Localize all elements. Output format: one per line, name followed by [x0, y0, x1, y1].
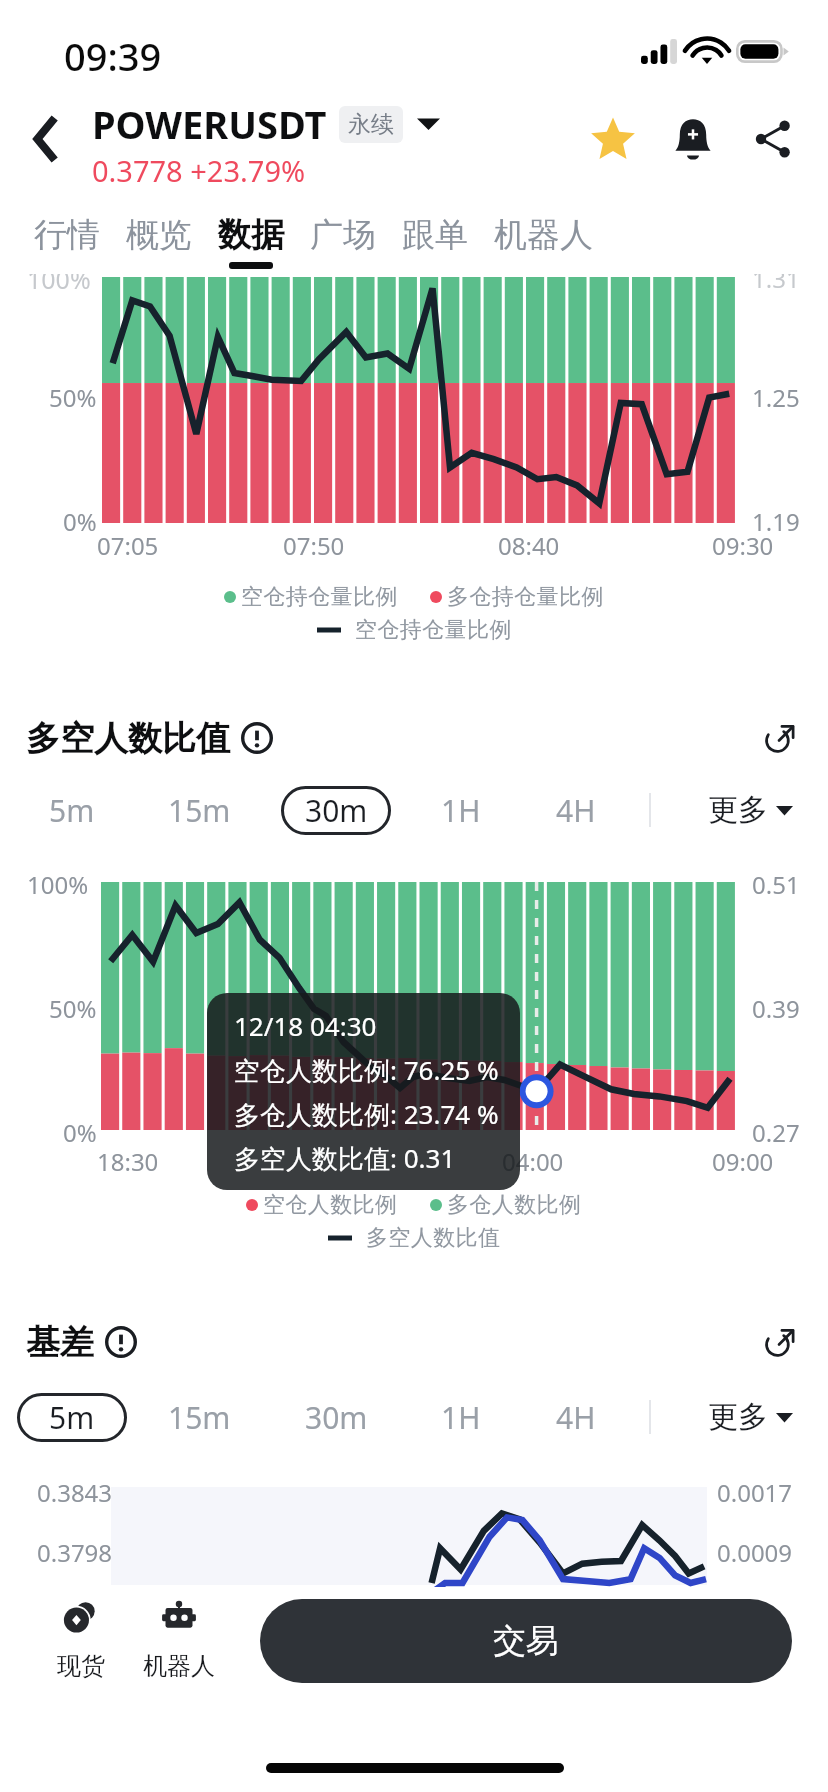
staticText: POWERUSDT: [92, 98, 327, 150]
staticText: 5m: [49, 1397, 95, 1438]
staticText: 1H: [441, 1397, 481, 1438]
staticText: 机器人: [494, 214, 593, 256]
staticText: 0%: [63, 505, 97, 538]
button[interactable]: Share: [744, 110, 802, 168]
staticText: 30m: [305, 1397, 368, 1438]
button[interactable]: Open full screen: [754, 715, 806, 761]
button[interactable]: 更多: [676, 1386, 824, 1448]
staticText: 4H: [556, 1397, 596, 1438]
staticText: 0.51: [752, 868, 800, 901]
staticText: 数据: [218, 214, 284, 256]
staticText: 09:39: [64, 30, 162, 82]
staticText: 15m: [168, 790, 231, 831]
staticText: 0.27: [752, 1116, 800, 1149]
staticText: 15m: [168, 1397, 231, 1438]
staticText: 0.3843: [37, 1476, 113, 1509]
staticText: 30m: [305, 790, 368, 831]
button[interactable]: 30m: [273, 779, 399, 841]
staticText: 广场: [310, 214, 376, 256]
staticText: 0%: [63, 1116, 97, 1149]
button[interactable]: 更多: [676, 779, 824, 841]
button[interactable]: 4H: [513, 779, 639, 841]
staticText: 多空人数比值: [366, 1224, 501, 1252]
button[interactable]: 概览: [113, 214, 205, 274]
staticText: 12/18 04:30: [234, 1008, 377, 1043]
button[interactable]: 交易: [260, 1599, 792, 1683]
staticText: 空仓人数比例: 76.25 %: [234, 1052, 499, 1088]
button[interactable]: 机器人: [481, 214, 606, 274]
button[interactable]: Favorite: [584, 110, 642, 168]
staticText: 多空人数比值: 0.31: [234, 1140, 456, 1176]
staticText: 50%: [49, 992, 97, 1025]
staticText: 跟单: [402, 214, 468, 256]
staticText: 07:05: [97, 529, 159, 562]
staticText: 空仓人数比例: [263, 1191, 398, 1219]
button[interactable]: 4H: [513, 1386, 639, 1448]
staticText: 多仓人数比例: [447, 1191, 582, 1219]
staticText: 5m: [49, 790, 95, 831]
button[interactable]: 现货: [31, 1598, 131, 1688]
staticText: 08:40: [498, 529, 560, 562]
staticText: 多仓持仓量比例: [447, 583, 604, 611]
staticText: 现货: [57, 1651, 105, 1681]
staticText: 多仓人数比例: 23.74 %: [234, 1096, 499, 1132]
staticText: 09:30: [712, 529, 774, 562]
staticText: 1.25: [752, 381, 800, 414]
button[interactable]: 30m: [273, 1386, 399, 1448]
staticText: 4H: [556, 790, 596, 831]
button[interactable]: 15m: [136, 779, 262, 841]
staticText: 基差: [26, 1321, 94, 1364]
button[interactable]: 1H: [398, 1386, 524, 1448]
staticText: 100%: [27, 274, 91, 296]
button[interactable]: 跟单: [389, 214, 481, 274]
button[interactable]: 广场: [297, 214, 389, 274]
staticText: 概览: [126, 214, 192, 256]
button[interactable]: 5m: [9, 779, 135, 841]
staticText: 50%: [49, 381, 97, 414]
staticText: 行情: [34, 214, 100, 256]
staticText: 空仓持仓量比例: [355, 616, 512, 644]
staticText: 1.31: [752, 274, 800, 295]
staticText: 1.19: [752, 505, 800, 538]
staticText: 07:50: [283, 529, 345, 562]
staticText: 机器人: [143, 1651, 215, 1681]
staticText: 04:00: [502, 1145, 564, 1178]
staticText: 0.0009: [717, 1536, 793, 1569]
staticText: 0.39: [752, 992, 800, 1025]
staticText: 永续: [348, 110, 394, 139]
staticText: 更多: [708, 1398, 768, 1436]
staticText: 100%: [27, 868, 89, 901]
button[interactable]: 行情: [21, 214, 113, 274]
button[interactable]: 5m: [9, 1386, 135, 1448]
button[interactable]: Back: [14, 106, 80, 172]
staticText: 1H: [441, 790, 481, 831]
staticText: 空仓持仓量比例: [241, 583, 398, 611]
staticText: 多空人数比值: [26, 717, 230, 760]
staticText: 09:00: [712, 1145, 774, 1178]
button[interactable]: 1H: [398, 779, 524, 841]
button[interactable]: 15m: [136, 1386, 262, 1448]
button[interactable]: Price alert: [664, 110, 722, 168]
staticText: 0.0017: [717, 1476, 793, 1509]
button[interactable]: 数据: [205, 214, 297, 274]
staticText: 0.3798: [37, 1536, 113, 1569]
button[interactable]: Open full screen: [754, 1319, 806, 1365]
staticText: 交易: [493, 1620, 559, 1662]
staticText: 更多: [708, 791, 768, 829]
staticText: 18:30: [97, 1145, 159, 1178]
button[interactable]: 机器人: [124, 1598, 234, 1688]
staticText: 0.3778 +23.79%: [92, 151, 306, 190]
